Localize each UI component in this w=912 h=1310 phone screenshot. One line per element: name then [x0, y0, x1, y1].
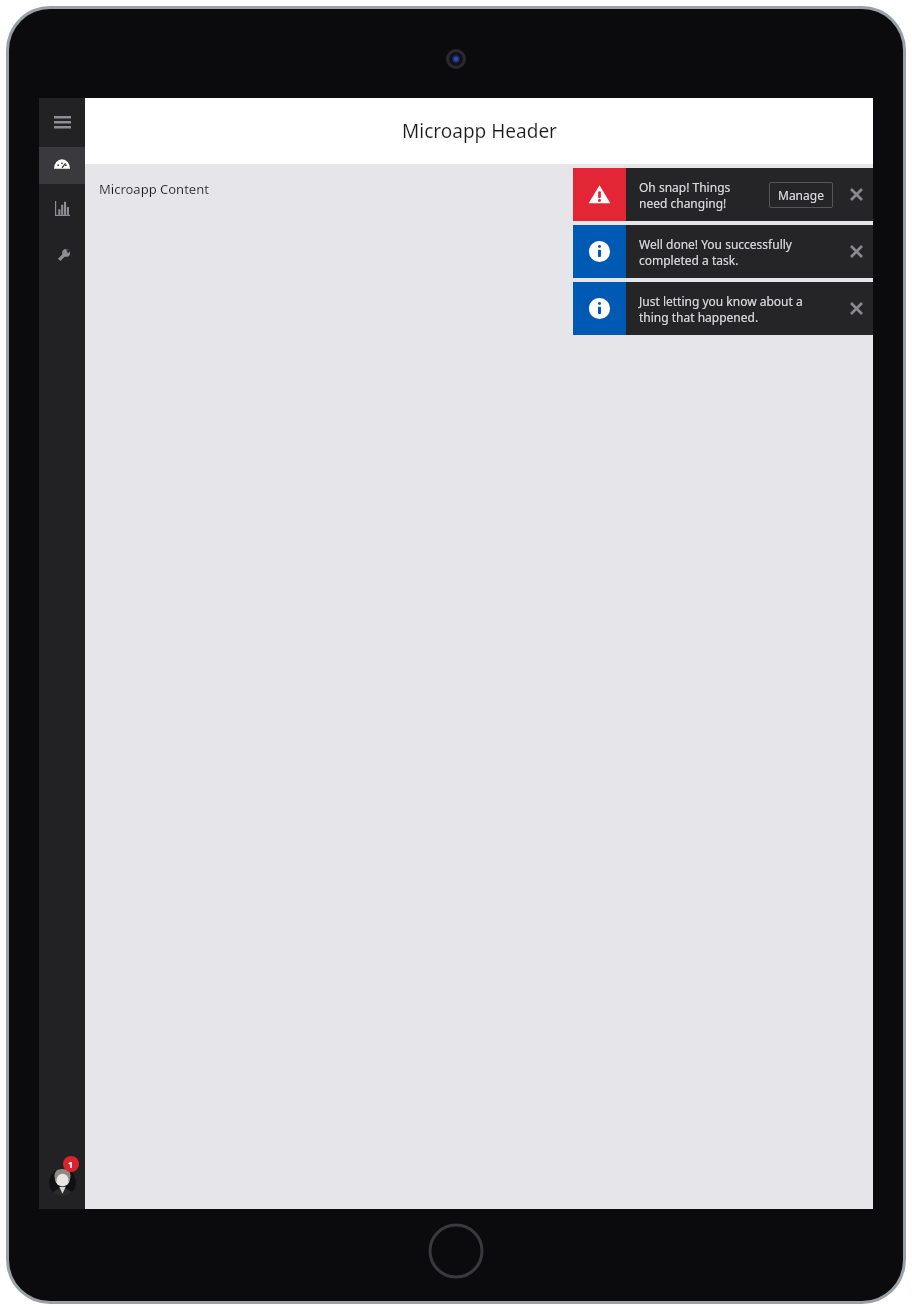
button[interactable]: Just letting you know about a thing that… — [573, 282, 873, 335]
button[interactable]: Dashboard — [39, 147, 85, 184]
button[interactable]: Manage — [769, 182, 833, 208]
button[interactable]: Oh snap! Things need changing! — [573, 168, 873, 221]
button[interactable]: Well done! You successfully completed a … — [573, 225, 873, 278]
staticText: Manage — [778, 187, 824, 203]
staticText: 1 — [68, 1158, 74, 1170]
staticText: Well done! You successfully completed a … — [639, 236, 831, 268]
staticText: Just letting you know about a thing that… — [639, 293, 831, 325]
button[interactable]: Menu — [39, 98, 85, 147]
button[interactable]: Dismiss — [839, 225, 873, 278]
staticText: Microapp Header — [402, 118, 557, 144]
staticText: Oh snap! Things need changing! — [639, 179, 761, 211]
staticText: Microapp Content — [99, 180, 209, 198]
button[interactable]: Settings — [39, 232, 85, 280]
button[interactable]: Profile — [39, 1155, 85, 1209]
button[interactable]: Dismiss — [839, 282, 873, 335]
button[interactable]: Reports — [39, 184, 85, 232]
button[interactable]: Dismiss — [839, 168, 873, 221]
